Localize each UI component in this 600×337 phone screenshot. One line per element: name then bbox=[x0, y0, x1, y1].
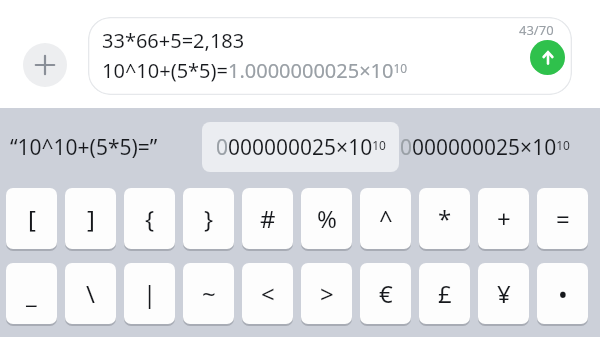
button[interactable]: £ bbox=[419, 263, 470, 324]
staticText: | bbox=[143, 277, 157, 310]
staticText: ^ bbox=[379, 202, 393, 235]
staticText: _ bbox=[26, 277, 37, 310]
staticText: % bbox=[317, 202, 337, 235]
staticText: 0000000025×1010 bbox=[216, 133, 386, 162]
button[interactable]: ] bbox=[65, 188, 116, 249]
button[interactable]: | bbox=[124, 263, 175, 324]
button[interactable]: _ bbox=[6, 263, 57, 324]
button[interactable]: • bbox=[537, 263, 588, 324]
staticText: = bbox=[556, 202, 570, 235]
staticText: # bbox=[260, 202, 276, 235]
staticText: • bbox=[558, 276, 568, 311]
button[interactable]: # bbox=[242, 188, 293, 249]
button[interactable]: “10^10+(5*5)=” bbox=[10, 122, 196, 172]
button[interactable]: [ bbox=[6, 188, 57, 249]
staticText: 0000000025×1010 bbox=[400, 133, 570, 162]
button[interactable]: Add attachment bbox=[23, 43, 67, 87]
staticText: ¥ bbox=[497, 277, 511, 310]
staticText: + bbox=[497, 202, 511, 235]
staticText: < bbox=[261, 277, 275, 310]
button[interactable]: \ bbox=[65, 263, 116, 324]
button[interactable]: > bbox=[301, 263, 352, 324]
staticText: ~ bbox=[202, 277, 216, 310]
button[interactable]: ¥ bbox=[478, 263, 529, 324]
staticText: { bbox=[145, 202, 155, 235]
staticText: “10^10+(5*5)=” bbox=[10, 133, 158, 162]
staticText: * bbox=[438, 202, 452, 235]
staticText: } bbox=[204, 202, 214, 235]
button[interactable]: ^ bbox=[360, 188, 411, 249]
button[interactable]: + bbox=[478, 188, 529, 249]
button[interactable]: { bbox=[124, 188, 175, 249]
staticText: £ bbox=[438, 277, 452, 310]
staticText: € bbox=[379, 277, 393, 310]
button[interactable]: } bbox=[183, 188, 234, 249]
button[interactable]: ~ bbox=[183, 263, 234, 324]
button[interactable]: < bbox=[242, 263, 293, 324]
button[interactable]: 0000000025×1010 bbox=[400, 122, 596, 172]
staticText: [ bbox=[28, 202, 36, 235]
button[interactable]: € bbox=[360, 263, 411, 324]
button[interactable]: 33*66+5=2,183 bbox=[88, 17, 572, 95]
staticText: 43/70 bbox=[519, 21, 554, 39]
button[interactable]: % bbox=[301, 188, 352, 249]
button[interactable]: Send bbox=[530, 40, 565, 75]
button[interactable]: = bbox=[537, 188, 588, 249]
staticText: 10^10+(5*5)=1.0000000025×1010 bbox=[102, 57, 408, 84]
staticText: > bbox=[320, 277, 334, 310]
staticText: ] bbox=[87, 202, 95, 235]
staticText: 33*66+5=2,183 bbox=[102, 27, 245, 54]
staticText: \ bbox=[86, 277, 95, 310]
button[interactable]: * bbox=[419, 188, 470, 249]
button[interactable] bbox=[202, 122, 399, 172]
